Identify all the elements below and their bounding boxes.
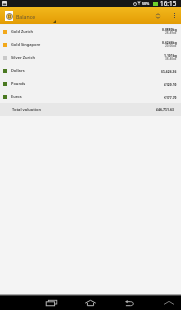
staticText: 28.49oz	[165, 31, 177, 35]
staticText: €177.70	[164, 95, 177, 99]
button[interactable]: Home	[80, 296, 101, 310]
button[interactable]: Euros	[0, 90, 181, 103]
staticText: 50%	[142, 1, 150, 6]
button[interactable]: More options	[168, 7, 180, 24]
staticText: 38.40oz	[165, 57, 177, 61]
staticText: 1.101kg	[164, 53, 177, 57]
button[interactable]: Silver Zurich	[0, 51, 181, 64]
staticText: Euros	[11, 94, 22, 99]
button[interactable]: Total valuation	[0, 103, 181, 116]
staticText: Pounds	[11, 81, 26, 86]
staticText: 16:15	[160, 0, 177, 6]
button[interactable]: Gold Zurich	[0, 25, 181, 38]
staticText: £120.10	[164, 82, 177, 86]
staticText: Balance	[16, 13, 36, 20]
button[interactable]: Recents	[41, 296, 62, 310]
staticText: Gold Zurich	[11, 29, 34, 34]
button[interactable]: Hide navigation bar	[159, 296, 179, 310]
staticText: 20.06oz	[165, 44, 177, 48]
button[interactable]: Back	[119, 296, 140, 310]
staticText: Total valuation	[12, 107, 41, 112]
button[interactable]: Dollars	[0, 64, 181, 77]
staticText: $5,626.36	[161, 69, 177, 73]
button[interactable]: Refresh	[151, 7, 165, 24]
staticText: Dollars	[11, 68, 25, 73]
button[interactable]: Gold Singapore	[0, 38, 181, 51]
staticText: Silver Zurich	[11, 55, 35, 60]
staticText: Gold Singapore	[11, 42, 41, 47]
staticText: 0.8880kg	[162, 27, 177, 31]
staticText: 0.6246kg	[162, 40, 177, 44]
button[interactable]: App icon	[5, 11, 13, 21]
button[interactable]: Pounds	[0, 77, 181, 90]
staticText: £46,751.63	[156, 107, 174, 112]
